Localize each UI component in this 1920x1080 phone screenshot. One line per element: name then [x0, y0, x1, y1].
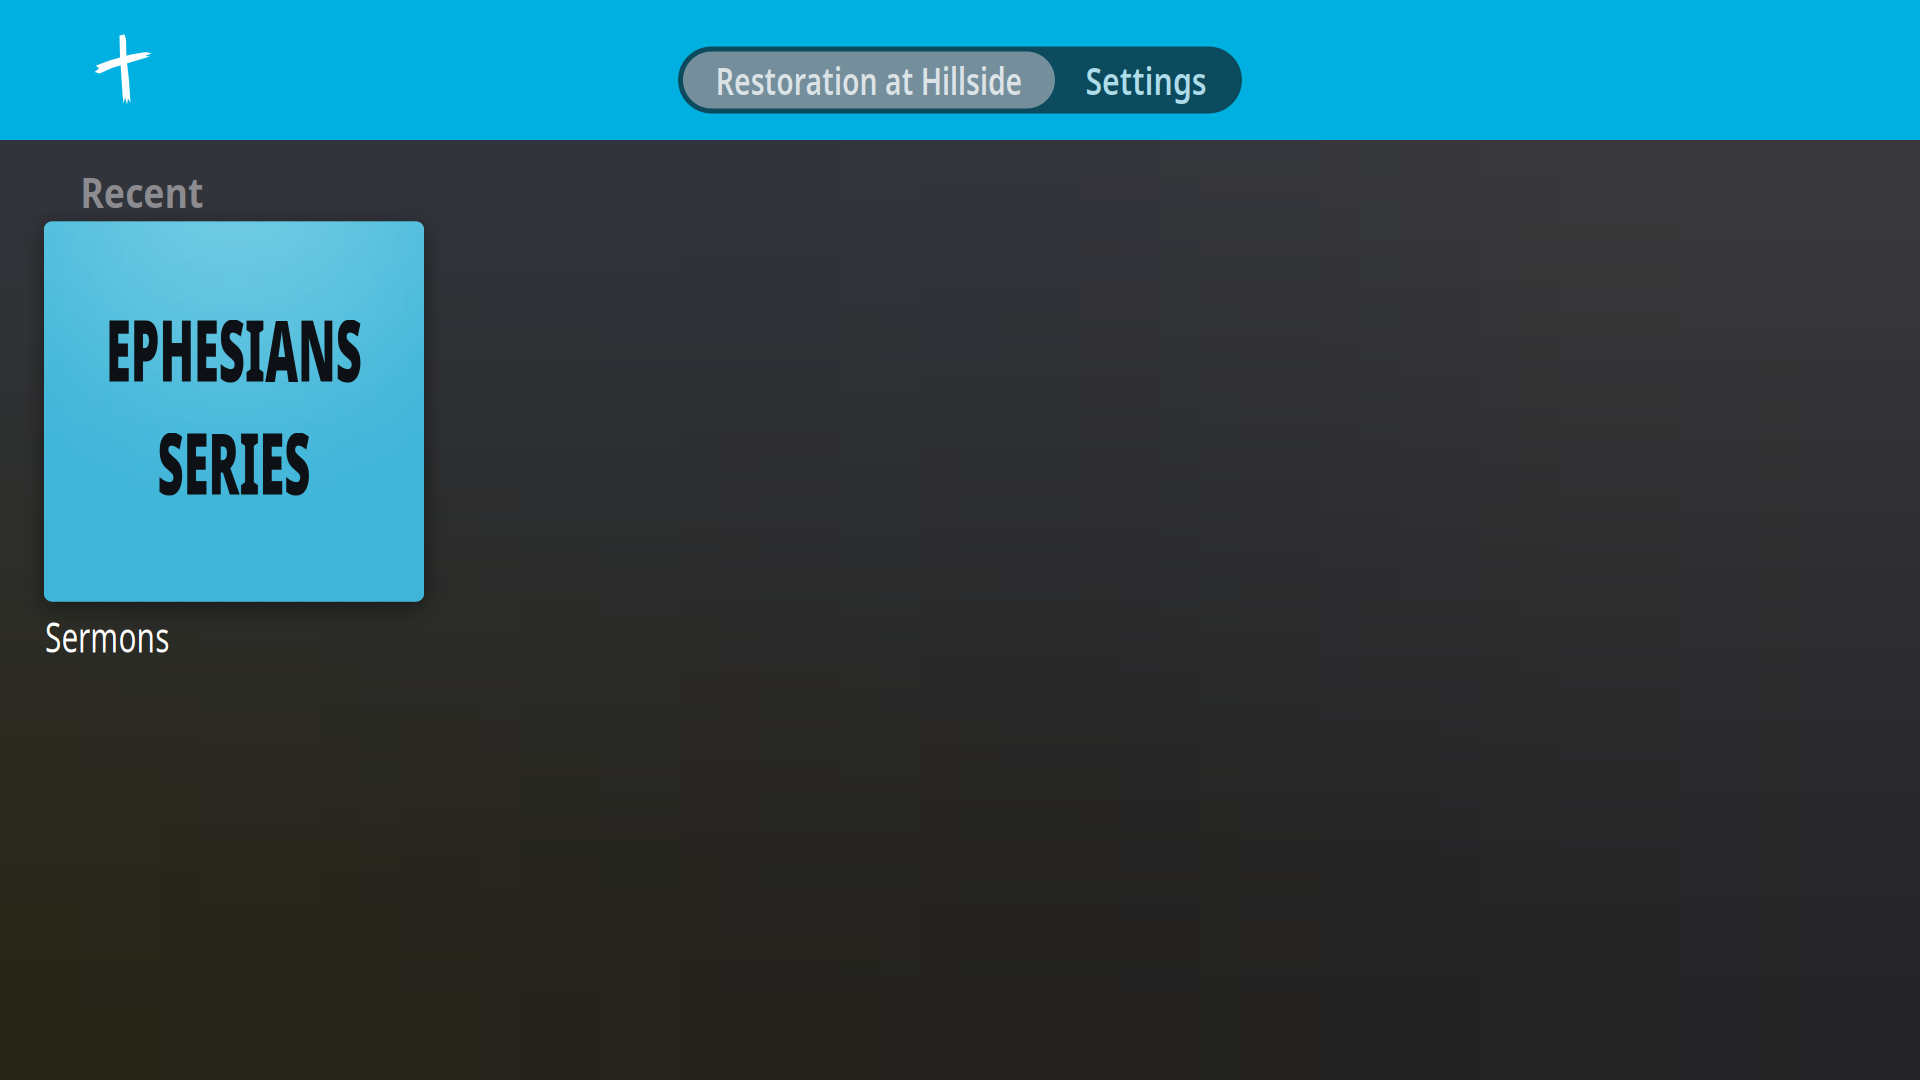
staticText: Recent: [70, 165, 213, 219]
button[interactable]: EPHESIANS: [44, 221, 424, 654]
staticText: SERIES: [85, 403, 382, 520]
staticText: Restoration at Hillside: [659, 54, 1079, 106]
button[interactable]: Home: [93, 32, 153, 105]
staticText: Settings: [1068, 54, 1223, 106]
button[interactable]: Settings: [1055, 51, 1237, 108]
button[interactable]: Restoration at Hillside: [683, 51, 1055, 108]
staticText: Sermons: [45, 609, 218, 664]
staticText: EPHESIANS: [0, 290, 482, 407]
